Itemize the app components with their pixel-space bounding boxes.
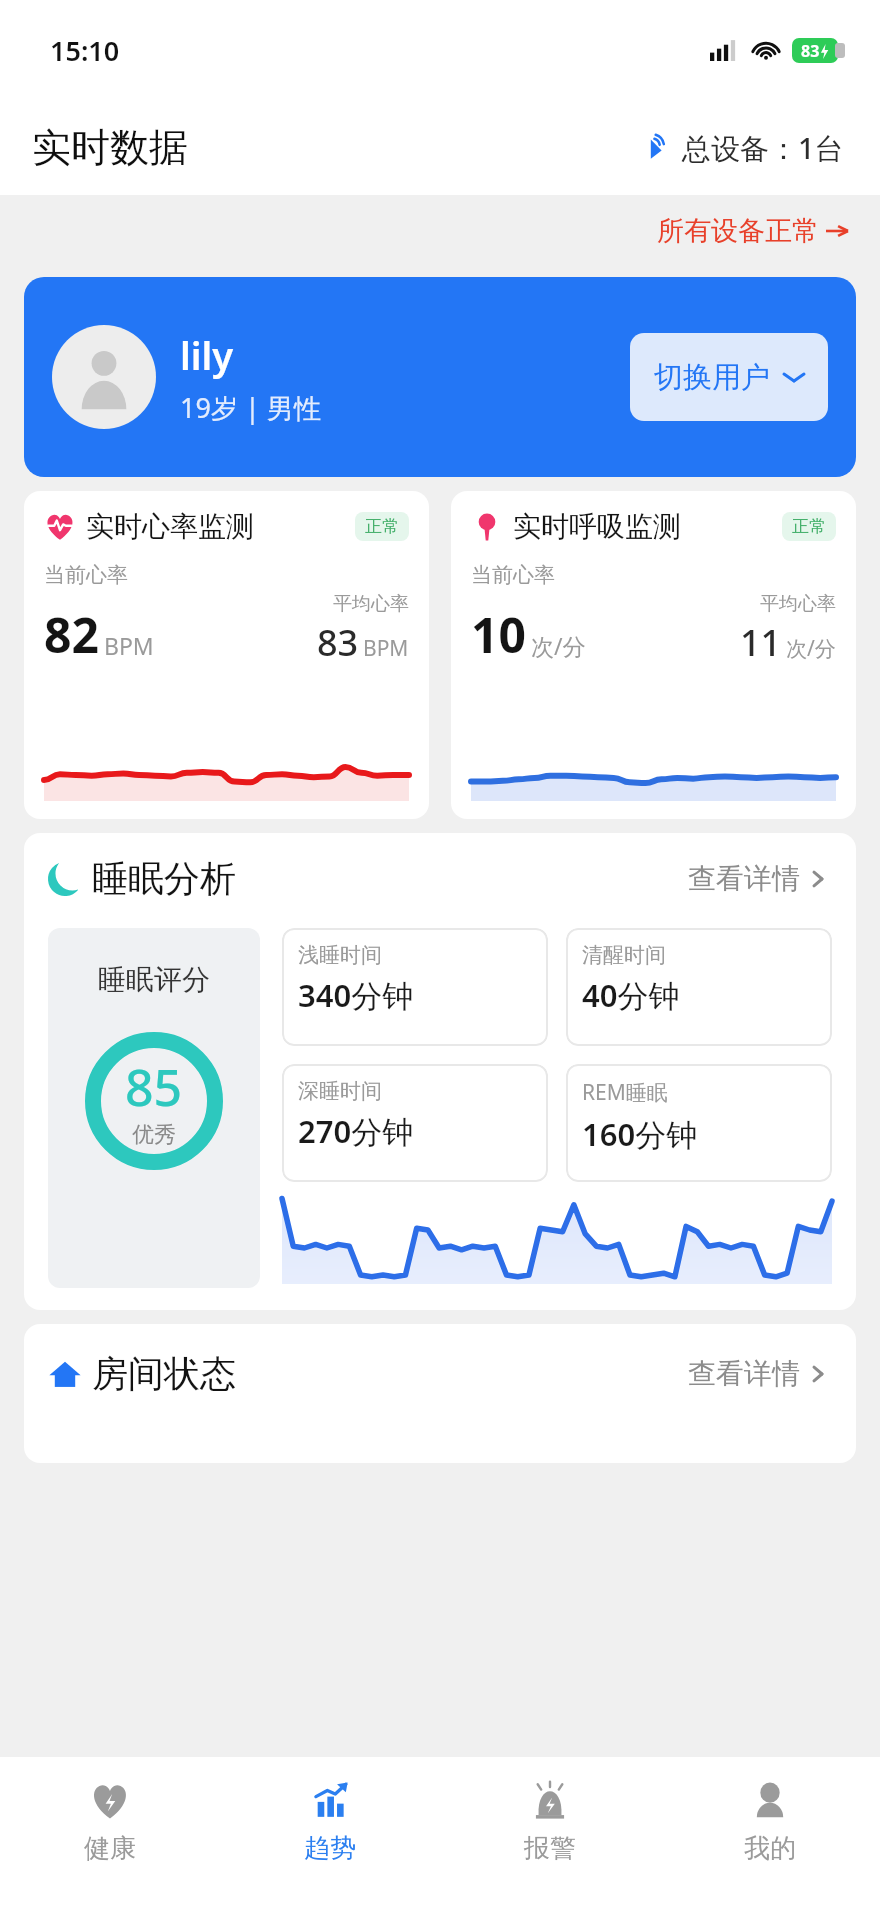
staticText: 270分钟 <box>298 1110 414 1152</box>
staticText: 优秀 <box>132 1121 176 1149</box>
staticText: 实时数据 <box>32 123 188 172</box>
button[interactable]: Devices <box>639 124 848 172</box>
staticText: 总设备：1台 <box>682 128 844 168</box>
button[interactable]: 清醒时间 <box>566 928 832 1046</box>
staticText: 340分钟 <box>298 974 414 1016</box>
button[interactable]: 所有设备正常 <box>653 208 852 254</box>
staticText: 所有设备正常 <box>657 214 819 248</box>
staticText: 19岁 | 男性 <box>180 389 321 426</box>
staticText: 我的 <box>744 1832 796 1865</box>
staticText: BPM <box>104 630 154 661</box>
staticText: 趋势 <box>304 1832 356 1865</box>
staticText: 浅睡时间 <box>298 942 382 968</box>
button[interactable]: REM睡眠 <box>566 1064 832 1182</box>
button[interactable]: 深睡时间 <box>282 1064 548 1182</box>
staticText: 实时心率监测 <box>86 509 254 544</box>
staticText: 查看详情 <box>688 861 800 896</box>
button[interactable]: 实时呼吸监测 <box>451 491 856 819</box>
staticText: 15:10 <box>50 32 120 69</box>
staticText: 当前心率 <box>471 562 555 588</box>
staticText: 深睡时间 <box>298 1078 382 1104</box>
staticText: 查看详情 <box>688 1356 800 1391</box>
staticText: 82 <box>44 602 99 667</box>
button[interactable]: 报警 <box>440 1757 660 1907</box>
other: Devices <box>643 133 673 163</box>
staticText: 报警 <box>524 1832 576 1865</box>
staticText: 次/分 <box>786 634 836 663</box>
staticText: 85 <box>125 1053 183 1121</box>
staticText: 83 <box>801 40 820 62</box>
staticText: 11 <box>740 618 782 667</box>
staticText: 当前心率 <box>44 562 128 588</box>
button[interactable]: 切换用户 <box>630 333 828 421</box>
staticText: 83 <box>317 618 359 667</box>
button[interactable]: 房间状态 <box>24 1324 856 1463</box>
button[interactable]: 浅睡时间 <box>282 928 548 1046</box>
button[interactable]: 查看详情 <box>684 855 832 902</box>
staticText: 正常 <box>365 516 399 537</box>
button[interactable]: 健康 <box>0 1757 220 1907</box>
staticText: lily <box>180 329 234 381</box>
staticText: 正常 <box>792 516 826 537</box>
staticText: 平均心率 <box>333 592 409 616</box>
staticText: 实时呼吸监测 <box>513 509 681 544</box>
staticText: 睡眠评分 <box>98 962 210 997</box>
staticText: 房间状态 <box>92 1351 236 1396</box>
button[interactable]: 实时心率监测 <box>24 491 429 819</box>
staticText: 切换用户 <box>654 359 770 396</box>
staticText: 10 <box>471 602 526 667</box>
staticText: 次/分 <box>531 630 586 661</box>
staticText: BPM <box>363 634 409 663</box>
button[interactable]: 查看详情 <box>684 1350 832 1397</box>
staticText: 清醒时间 <box>582 942 666 968</box>
staticText: 160分钟 <box>582 1113 698 1155</box>
staticText: 平均心率 <box>760 592 836 616</box>
staticText: REM睡眠 <box>582 1078 668 1107</box>
button[interactable]: 趋势 <box>220 1757 440 1907</box>
staticText: 40分钟 <box>582 974 680 1016</box>
button[interactable]: 我的 <box>660 1757 880 1907</box>
staticText: 健康 <box>84 1832 136 1865</box>
staticText: 睡眠分析 <box>92 856 236 901</box>
button[interactable]: lily <box>24 277 856 477</box>
